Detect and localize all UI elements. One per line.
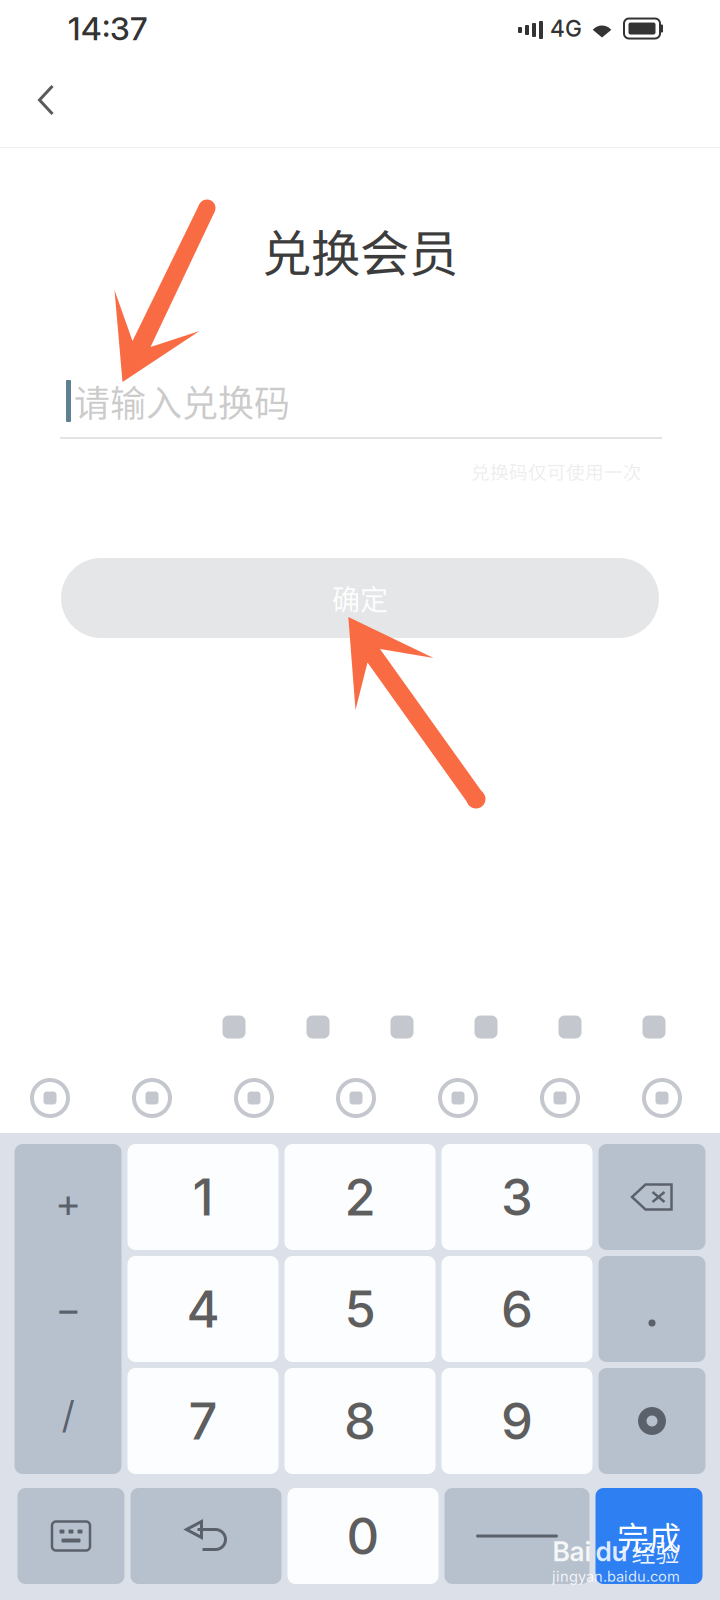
button[interactable]: 7 bbox=[127, 1368, 278, 1474]
button[interactable]: 8 bbox=[284, 1368, 435, 1474]
button[interactable]: Keyboard tool bbox=[101, 1070, 203, 1126]
staticText: 14:37 bbox=[68, 9, 147, 48]
button[interactable]: 确定 bbox=[61, 558, 659, 638]
staticText: − bbox=[55, 1285, 80, 1333]
button[interactable]: Keyboard tool bbox=[305, 1070, 407, 1126]
staticText: 5 bbox=[344, 1278, 375, 1340]
staticText: jingyan.baidu.com bbox=[552, 1568, 680, 1585]
button[interactable]: 完成 bbox=[595, 1488, 702, 1584]
button[interactable]: 9 bbox=[441, 1368, 592, 1474]
button[interactable]: Keyboard tool bbox=[407, 1070, 509, 1126]
button[interactable]: Keyboard tool bbox=[192, 999, 276, 1055]
button[interactable]: Symbols bbox=[598, 1368, 705, 1474]
staticText: 完成 bbox=[617, 1513, 681, 1559]
staticText: 1 bbox=[192, 1166, 213, 1228]
button[interactable]: Operators bbox=[14, 1144, 121, 1474]
button[interactable]: Backspace bbox=[598, 1144, 705, 1250]
staticText: 6 bbox=[501, 1278, 533, 1340]
staticText: 确定 bbox=[332, 578, 388, 618]
button[interactable]: 6 bbox=[441, 1256, 592, 1362]
button[interactable]: Keyboard tool bbox=[360, 999, 444, 1055]
staticText: 兑换会员 bbox=[262, 214, 458, 286]
button[interactable]: Keyboard tool bbox=[509, 1070, 611, 1126]
button[interactable]: Undo bbox=[130, 1488, 281, 1584]
button[interactable]: Keyboard tool bbox=[611, 1070, 713, 1126]
button[interactable]: Keyboard tool bbox=[528, 999, 612, 1055]
staticText: 2 bbox=[344, 1166, 375, 1228]
staticText: 8 bbox=[344, 1390, 376, 1452]
staticText: du bbox=[595, 1535, 627, 1568]
staticText: 7 bbox=[188, 1390, 217, 1452]
button[interactable]: 1 bbox=[127, 1144, 278, 1250]
button[interactable]: Keyboard tool bbox=[203, 1070, 305, 1126]
staticText: Bai bbox=[552, 1535, 591, 1568]
button[interactable]: 2 bbox=[284, 1144, 435, 1250]
staticText: 9 bbox=[501, 1390, 533, 1452]
button[interactable]: Keyboard tool bbox=[612, 999, 696, 1055]
button[interactable]: 5 bbox=[284, 1256, 435, 1362]
staticText: / bbox=[62, 1392, 74, 1438]
button[interactable]: Keyboard tool bbox=[444, 999, 528, 1055]
button[interactable]: Back bbox=[0, 54, 92, 146]
staticText: 4G bbox=[550, 15, 582, 42]
staticText: 0 bbox=[346, 1505, 379, 1567]
button[interactable]: Decimal point bbox=[598, 1256, 705, 1362]
button[interactable]: Switch keyboard bbox=[17, 1488, 124, 1584]
staticText: 兑换码仅可使用一次 bbox=[471, 457, 642, 484]
button[interactable]: Keyboard tool bbox=[0, 1070, 101, 1126]
staticText: 3 bbox=[501, 1166, 533, 1228]
staticText: 请输入兑换码 bbox=[74, 375, 290, 427]
staticText: + bbox=[55, 1179, 80, 1227]
staticText: 4 bbox=[186, 1278, 219, 1340]
button[interactable]: 3 bbox=[441, 1144, 592, 1250]
button[interactable]: Space bbox=[444, 1488, 589, 1584]
button[interactable]: 0 bbox=[287, 1488, 438, 1584]
button[interactable]: Keyboard tool bbox=[276, 999, 360, 1055]
button[interactable]: 4 bbox=[127, 1256, 278, 1362]
staticText: 经验 bbox=[631, 1534, 679, 1569]
